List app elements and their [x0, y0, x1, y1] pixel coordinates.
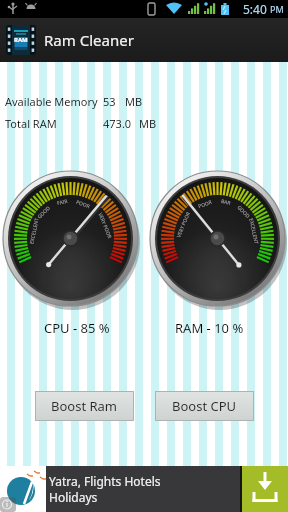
staticText: POOR — [197, 199, 213, 210]
staticText: MB — [139, 116, 157, 131]
staticText: Holidays — [49, 489, 98, 505]
staticText: Ram Cleaner — [44, 30, 134, 50]
staticText: POOR — [75, 199, 91, 210]
staticText: EXCELLENT — [247, 218, 260, 246]
staticText: 53 — [103, 94, 116, 109]
staticText: BAR — [220, 198, 231, 207]
staticText: VERY POOR — [175, 211, 192, 239]
staticText: Boost Ram — [51, 397, 118, 415]
staticText: RAM - 10 % — [175, 319, 244, 337]
staticText: Boost CPU — [172, 397, 237, 415]
staticText: 473.0 — [103, 116, 132, 131]
staticText: VERY POOR — [96, 212, 113, 239]
staticText: Total RAM — [5, 116, 57, 131]
staticText: GOOD — [235, 204, 252, 220]
staticText: PM — [270, 3, 284, 15]
staticText: GOOD — [36, 204, 52, 220]
staticText: CPU - 85 % — [44, 319, 110, 337]
staticText: 5:40 — [243, 1, 270, 17]
staticText: RAM — [14, 36, 28, 44]
staticText: MB — [125, 94, 143, 109]
button[interactable]: Boost Ram — [36, 392, 133, 420]
staticText: Available Memory — [5, 94, 98, 109]
button[interactable]: Boost CPU — [156, 392, 253, 420]
button[interactable]: Yatra, Flights Hotels — [0, 466, 288, 512]
button[interactable] — [242, 466, 288, 512]
staticText: EXCELLENT — [28, 217, 41, 245]
staticText: FAIR — [56, 198, 69, 207]
staticText: Yatra, Flights Hotels — [49, 473, 161, 489]
